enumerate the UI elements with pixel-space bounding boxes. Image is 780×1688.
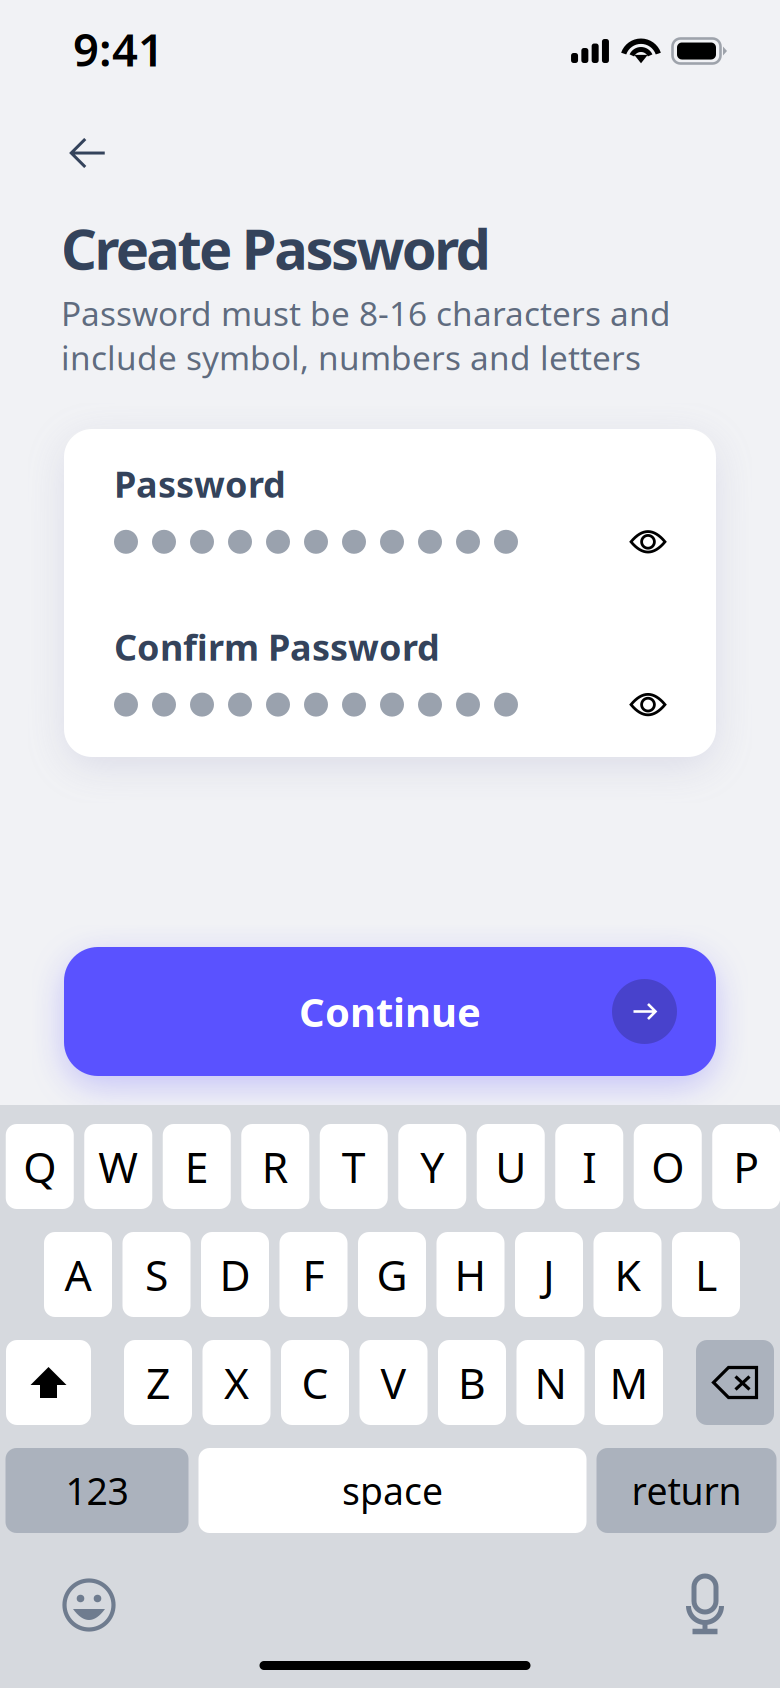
button[interactable]: 123 — [5, 1448, 188, 1533]
staticText: E — [185, 1138, 209, 1195]
staticText: M — [609, 1354, 648, 1411]
staticText: S — [145, 1246, 168, 1303]
staticText: H — [454, 1246, 486, 1303]
staticText: A — [64, 1246, 91, 1303]
staticText: 123 — [65, 1466, 128, 1515]
staticText: 9:41 — [73, 19, 164, 79]
staticText: L — [695, 1246, 717, 1303]
button[interactable]: S — [122, 1232, 190, 1317]
button[interactable]: X — [202, 1340, 270, 1425]
staticText: I — [582, 1138, 596, 1195]
button[interactable]: W — [84, 1124, 152, 1209]
staticText: K — [614, 1246, 640, 1303]
button[interactable]: Z — [124, 1340, 192, 1425]
button[interactable]: N — [516, 1340, 584, 1425]
button[interactable]: Continue — [64, 947, 716, 1076]
button[interactable]: R — [241, 1124, 309, 1209]
staticText: Continue — [299, 985, 481, 1038]
staticText: O — [651, 1138, 684, 1195]
staticText: Q — [23, 1138, 56, 1195]
staticText: B — [458, 1354, 486, 1411]
button[interactable]: Show Password — [618, 519, 678, 565]
button[interactable]: Delete — [696, 1340, 774, 1425]
staticText: Password — [114, 460, 286, 508]
staticText: Create Password — [61, 211, 491, 285]
button[interactable]: J — [515, 1232, 583, 1317]
button[interactable]: I — [555, 1124, 623, 1209]
button[interactable]: Emoji keyboard — [34, 1565, 144, 1645]
button[interactable]: Q — [6, 1124, 74, 1209]
button[interactable]: V — [359, 1340, 427, 1425]
staticText: space — [342, 1466, 443, 1515]
button[interactable]: U — [477, 1124, 545, 1209]
staticText: X — [224, 1354, 249, 1411]
button[interactable]: F — [279, 1232, 347, 1317]
button[interactable]: Dictate — [650, 1565, 760, 1645]
staticText: R — [262, 1138, 289, 1195]
staticText: return — [631, 1466, 741, 1515]
button[interactable]: A — [44, 1232, 112, 1317]
staticText: C — [301, 1354, 328, 1411]
button[interactable]: L — [672, 1232, 740, 1317]
button[interactable]: K — [593, 1232, 661, 1317]
staticText: J — [543, 1246, 555, 1303]
staticText: T — [342, 1138, 366, 1195]
button[interactable]: B — [438, 1340, 506, 1425]
button[interactable]: Show Confirm Password — [618, 682, 678, 728]
staticText: Z — [146, 1354, 170, 1411]
staticText: P — [733, 1138, 759, 1195]
button[interactable]: G — [358, 1232, 426, 1317]
staticText: G — [376, 1246, 407, 1303]
button[interactable]: P — [712, 1124, 780, 1209]
staticText: Password must be 8-16 characters and inc… — [61, 291, 671, 379]
staticText: Confirm Password — [114, 623, 440, 671]
staticText: Y — [420, 1138, 444, 1195]
button[interactable]: Back — [50, 121, 126, 185]
button[interactable]: return — [596, 1448, 776, 1533]
button[interactable]: O — [634, 1124, 702, 1209]
staticText: U — [495, 1138, 526, 1195]
staticText: V — [380, 1354, 406, 1411]
staticText: N — [534, 1354, 566, 1411]
button[interactable]: Y — [398, 1124, 466, 1209]
button[interactable]: T — [320, 1124, 388, 1209]
button[interactable]: C — [281, 1340, 349, 1425]
button[interactable]: Shift — [6, 1340, 91, 1425]
button[interactable]: E — [163, 1124, 231, 1209]
staticText: D — [219, 1246, 250, 1303]
button[interactable]: space — [198, 1448, 586, 1533]
staticText: F — [302, 1246, 324, 1303]
button[interactable]: H — [436, 1232, 504, 1317]
staticText: W — [98, 1138, 138, 1195]
button[interactable]: D — [201, 1232, 269, 1317]
button[interactable]: M — [595, 1340, 663, 1425]
